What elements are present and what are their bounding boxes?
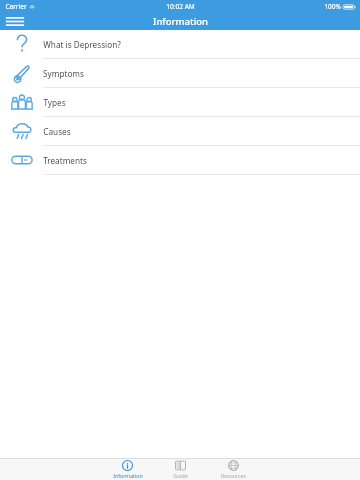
button[interactable]: Menu (4, 14, 26, 29)
button[interactable]: Information (101, 460, 154, 479)
staticText: Treatments (43, 155, 87, 166)
button[interactable]: What is Depression? (0, 30, 360, 59)
staticText: Causes (43, 126, 71, 137)
staticText: What is Depression? (43, 39, 121, 50)
button[interactable]: Treatments (0, 146, 360, 175)
button[interactable]: Types (0, 88, 360, 117)
button[interactable]: Symptoms (0, 59, 360, 88)
staticText: Resources (221, 472, 246, 479)
button[interactable]: Resources (207, 460, 260, 479)
staticText: Information (153, 15, 208, 28)
staticText: 100% (324, 2, 341, 11)
button[interactable]: Causes (0, 117, 360, 146)
staticText: Symptoms (43, 68, 84, 79)
button[interactable]: Guide (154, 460, 207, 479)
staticText: Guide (173, 472, 188, 479)
staticText: Types (43, 97, 66, 108)
staticText: 10:02 AM (166, 2, 195, 11)
staticText: Information (113, 472, 143, 479)
staticText: Carrier (5, 2, 27, 11)
